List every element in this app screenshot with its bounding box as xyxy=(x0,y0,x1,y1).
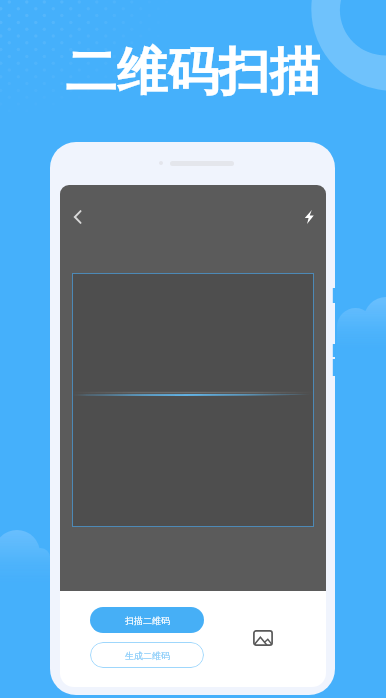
staticText: 扫描二维码 xyxy=(125,615,170,626)
button[interactable]: Back xyxy=(64,203,92,231)
button[interactable]: 扫描二维码 xyxy=(90,607,204,633)
staticText: 二维码扫描 xyxy=(0,40,386,104)
button[interactable]: Choose picture from album xyxy=(246,621,280,655)
button[interactable]: 生成二维码 xyxy=(90,642,204,668)
staticText: 生成二维码 xyxy=(125,650,170,661)
button[interactable]: Flashlight xyxy=(295,203,323,231)
